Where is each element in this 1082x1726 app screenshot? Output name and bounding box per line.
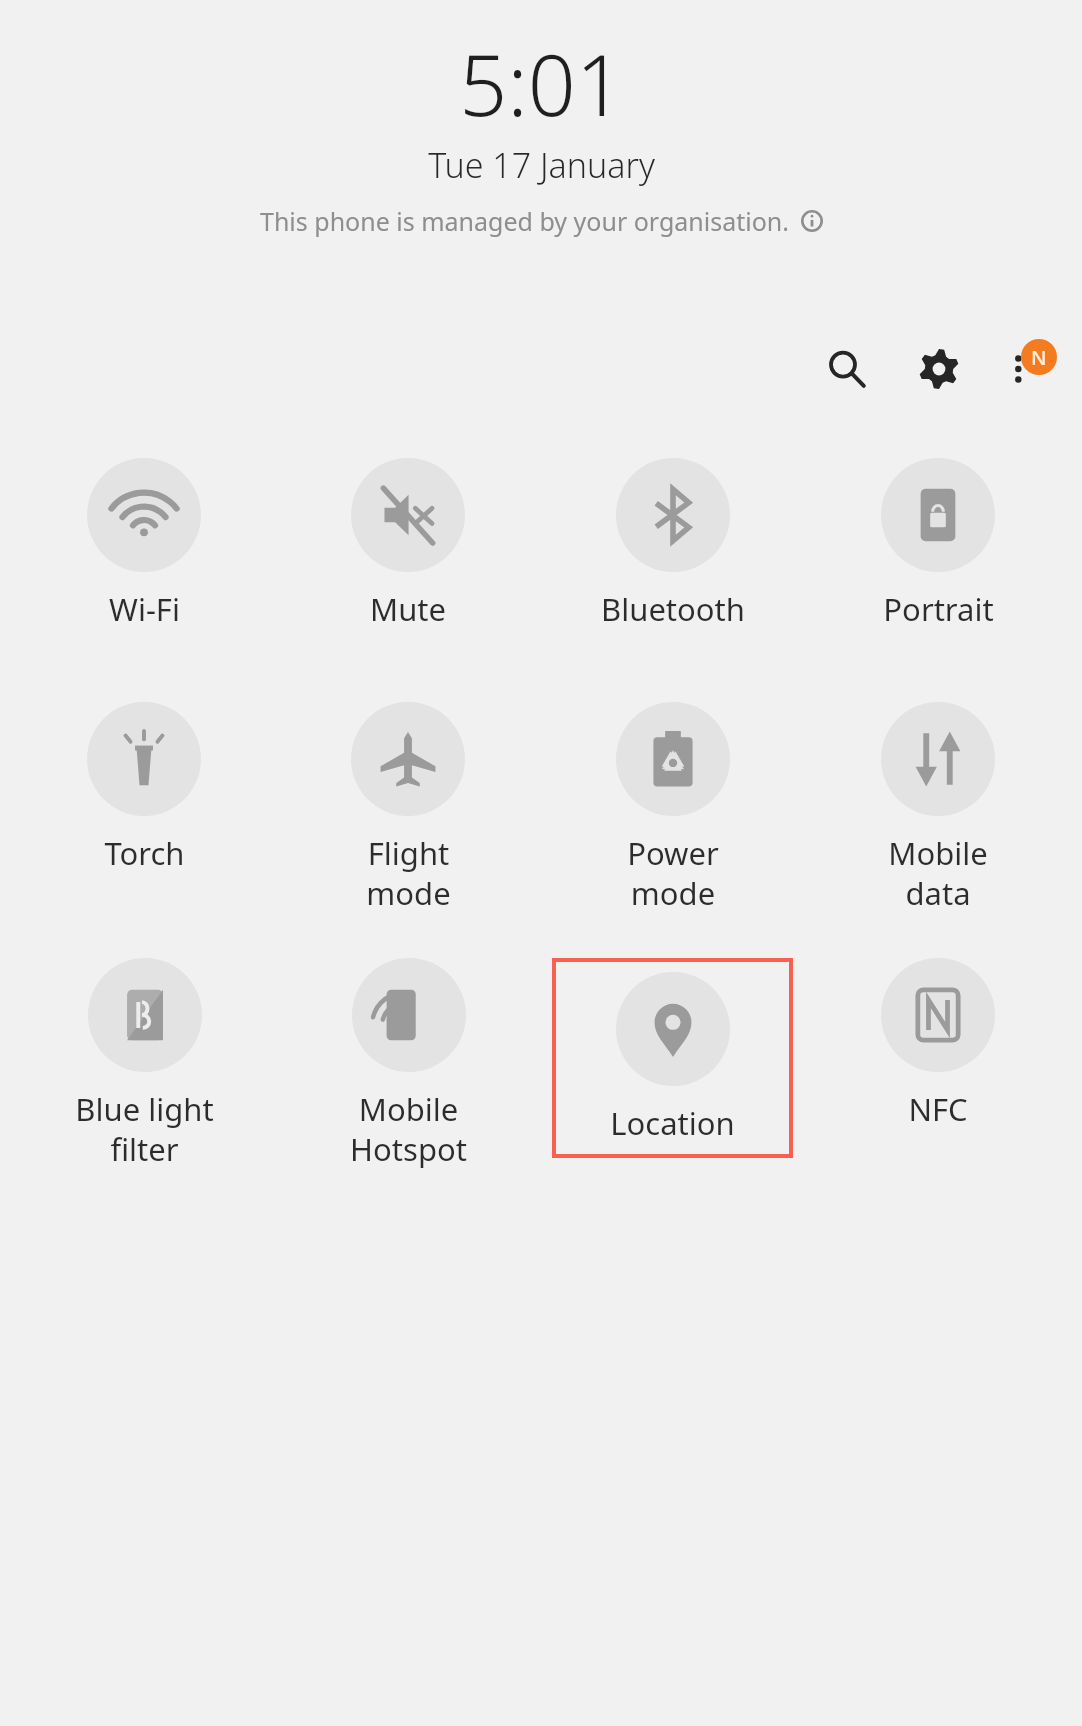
button[interactable]: Mute: [351, 458, 465, 630]
staticText: Portrait: [883, 588, 994, 630]
staticText: N: [1031, 344, 1047, 371]
button[interactable]: Torch: [87, 702, 201, 874]
staticText: Mobile Hotspot: [350, 1088, 467, 1170]
button[interactable]: Search: [816, 338, 878, 400]
staticText: Flight mode: [366, 832, 451, 914]
button[interactable]: NFC: [881, 958, 995, 1130]
staticText: NFC: [908, 1088, 968, 1130]
staticText: Tue 17 January: [428, 142, 655, 188]
staticText: Wi-Fi: [109, 588, 180, 630]
button[interactable]: Wi-Fi: [87, 458, 201, 630]
staticText: 5:01: [459, 26, 624, 140]
staticText: Torch: [104, 832, 185, 874]
staticText: Blue light filter: [75, 1088, 214, 1170]
staticText: Mobile data: [888, 832, 988, 914]
button[interactable]: Portrait: [881, 458, 995, 630]
button[interactable]: More options: [996, 338, 1058, 400]
staticText: Location: [610, 1102, 735, 1144]
staticText: Power mode: [627, 832, 719, 914]
staticText: Bluetooth: [601, 588, 745, 630]
staticText: Mute: [370, 588, 446, 630]
button[interactable]: Settings: [908, 338, 970, 400]
button[interactable]: Mobile Hotspot: [350, 958, 467, 1170]
button[interactable]: This phone is managed by your organisati…: [252, 200, 831, 242]
button[interactable]: Flight mode: [351, 702, 465, 914]
button[interactable]: Power mode: [616, 702, 730, 914]
button[interactable]: Bluetooth: [601, 458, 745, 630]
button[interactable]: Blue light filter: [75, 958, 214, 1170]
staticText: This phone is managed by your organisati…: [260, 204, 789, 238]
button[interactable]: Location: [552, 958, 793, 1158]
other: Info: [801, 210, 823, 232]
button[interactable]: Mobile data: [881, 702, 995, 914]
